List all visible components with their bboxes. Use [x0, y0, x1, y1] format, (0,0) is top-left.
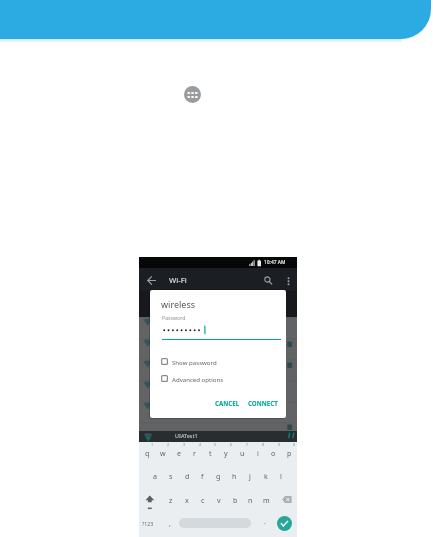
button[interactable]: j: [242, 470, 258, 481]
staticText: c: [201, 495, 205, 505]
staticText: b: [233, 495, 238, 505]
staticText: x: [185, 495, 189, 505]
staticText: u: [240, 448, 245, 458]
staticText: 1: [151, 442, 154, 447]
button[interactable]: u: [234, 447, 250, 458]
button[interactable]: s: [163, 470, 179, 481]
staticText: Wi-Fi: [169, 275, 187, 286]
button[interactable]: q: [139, 447, 155, 458]
staticText: s: [169, 471, 173, 481]
button[interactable]: [145, 274, 158, 287]
button[interactable]: v: [211, 494, 227, 505]
staticText: .: [264, 517, 266, 527]
button[interactable]: a: [147, 470, 163, 481]
staticText: 0: [293, 442, 296, 447]
staticText: Password: [162, 314, 186, 321]
button[interactable]: w: [155, 447, 171, 458]
button[interactable]: [277, 516, 292, 531]
staticText: g: [216, 471, 221, 481]
staticText: o: [271, 448, 276, 458]
button[interactable]: [0, 0, 431, 39]
staticText: e: [177, 448, 182, 458]
button[interactable]: f: [194, 470, 210, 481]
staticText: m: [263, 495, 270, 505]
button[interactable]: e: [171, 447, 187, 458]
staticText: n: [248, 495, 253, 505]
button[interactable]: [144, 495, 156, 509]
staticText: 4: [199, 442, 202, 447]
button[interactable]: i: [250, 447, 266, 458]
button[interactable]: m: [258, 494, 274, 505]
staticText: p: [287, 448, 292, 458]
button[interactable]: ,: [169, 519, 171, 528]
button[interactable]: Show password: [161, 357, 217, 366]
button[interactable]: y: [218, 447, 234, 458]
staticText: l: [280, 471, 282, 481]
staticText: r: [193, 448, 196, 458]
staticText: k: [264, 471, 268, 481]
button[interactable]: t: [202, 447, 218, 458]
staticText: ?123: [142, 520, 154, 527]
staticText: j: [249, 471, 251, 481]
button[interactable]: CONNECT: [248, 399, 278, 407]
staticText: UIATest1: [175, 432, 198, 439]
button[interactable]: [179, 518, 251, 528]
button[interactable]: .: [264, 517, 266, 527]
button[interactable]: l: [273, 470, 289, 481]
button[interactable]: z: [163, 494, 179, 505]
staticText: 3: [183, 442, 186, 447]
staticText: d: [185, 471, 190, 481]
button[interactable]: [279, 495, 294, 505]
staticText: wireless: [161, 298, 196, 310]
button[interactable]: ?123: [142, 520, 154, 527]
button[interactable]: [184, 86, 201, 103]
staticText: 8: [262, 442, 265, 447]
button[interactable]: c: [195, 494, 211, 505]
button[interactable]: UIATest1: [139, 431, 297, 443]
staticText: 10:47 AM: [264, 259, 286, 266]
staticText: z: [169, 495, 173, 505]
staticText: h: [232, 471, 237, 481]
button[interactable]: [284, 274, 293, 287]
staticText: i: [257, 448, 259, 458]
button[interactable]: [262, 274, 274, 287]
staticText: t: [209, 448, 212, 458]
button[interactable]: h: [226, 470, 242, 481]
button[interactable]: g: [210, 470, 226, 481]
staticText: q: [145, 448, 150, 458]
button[interactable]: x: [179, 494, 195, 505]
button[interactable]: Advanced options: [161, 374, 224, 383]
staticText: CONNECT: [248, 399, 278, 407]
staticText: w: [160, 448, 166, 458]
staticText: y: [224, 448, 228, 458]
button[interactable]: n: [242, 494, 258, 505]
staticText: 2: [167, 442, 170, 447]
button[interactable]: o: [265, 447, 281, 458]
button[interactable]: r: [186, 447, 202, 458]
staticText: 7: [246, 442, 249, 447]
button[interactable]: p: [281, 447, 297, 458]
staticText: 9: [278, 442, 281, 447]
staticText: 5: [214, 442, 217, 447]
button[interactable]: k: [258, 470, 274, 481]
staticText: f: [201, 471, 204, 481]
staticText: 6: [230, 442, 233, 447]
staticText: a: [153, 471, 157, 481]
button[interactable]: b: [227, 494, 243, 505]
staticText: v: [217, 495, 221, 505]
staticText: ,: [169, 519, 171, 528]
button[interactable]: d: [179, 470, 195, 481]
staticText: Show password: [172, 358, 217, 366]
staticText: CANCEL: [215, 399, 240, 407]
button[interactable]: CANCEL: [215, 399, 240, 407]
staticText: Advanced options: [172, 375, 224, 383]
